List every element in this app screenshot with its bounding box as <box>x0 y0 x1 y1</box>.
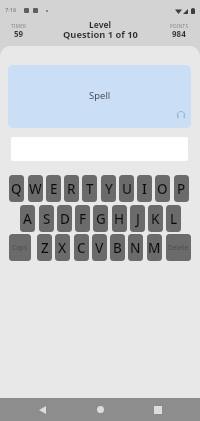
button[interactable]: Back <box>34 402 50 417</box>
staticText: M <box>148 239 161 257</box>
button[interactable]: C <box>74 234 89 261</box>
staticText: X <box>58 239 67 257</box>
button[interactable]: E <box>46 175 61 202</box>
button[interactable]: X <box>55 234 70 261</box>
staticText: N <box>130 239 141 257</box>
staticText: F <box>79 210 87 228</box>
staticText: Q <box>11 180 22 198</box>
button[interactable]: Recents <box>150 402 166 417</box>
button[interactable]: D <box>57 205 72 232</box>
staticText: Delete <box>168 243 189 252</box>
staticText: T <box>86 180 94 198</box>
button[interactable]: A <box>20 205 35 232</box>
button[interactable]: B <box>110 234 125 261</box>
button[interactable]: Z <box>37 234 52 261</box>
staticText: I <box>142 180 147 198</box>
button[interactable]: U <box>119 175 134 202</box>
staticText: B <box>113 239 122 257</box>
staticText: O <box>157 180 168 198</box>
staticText: V <box>95 239 104 257</box>
staticText: Z <box>41 239 49 257</box>
button[interactable]: Backspace <box>166 234 191 261</box>
staticText: R <box>67 180 76 198</box>
staticText: Level <box>89 19 112 31</box>
staticText: L <box>170 210 178 228</box>
staticText: U <box>122 180 132 198</box>
staticText: S <box>43 210 51 228</box>
button[interactable]: Shift <box>9 234 31 261</box>
staticText: Y <box>105 180 113 198</box>
button[interactable]: Play sound <box>175 109 187 121</box>
staticText: POINTS <box>170 23 189 29</box>
staticText: 59 <box>14 28 24 39</box>
staticText: A <box>23 210 32 228</box>
button[interactable]: I <box>137 175 152 202</box>
button[interactable]: Y <box>101 175 116 202</box>
staticText: Caps <box>12 243 28 252</box>
button[interactable]: Home <box>92 402 108 417</box>
staticText: Question 1 of 10 <box>63 28 138 41</box>
button[interactable]: W <box>28 175 43 202</box>
staticText: J <box>136 210 140 228</box>
staticText: 7:16 <box>5 6 17 14</box>
staticText: C <box>77 239 86 257</box>
button[interactable]: J <box>130 205 145 232</box>
button[interactable]: H <box>112 205 127 232</box>
staticText: P <box>177 180 186 198</box>
staticText: Spell <box>89 89 111 102</box>
staticText: K <box>151 210 160 228</box>
button[interactable]: T <box>82 175 97 202</box>
staticText: 984 <box>172 28 186 39</box>
button[interactable]: K <box>148 205 163 232</box>
button[interactable]: P <box>174 175 189 202</box>
button[interactable]: F <box>75 205 90 232</box>
staticText: E <box>50 180 58 198</box>
button[interactable]: O <box>155 175 170 202</box>
staticText: D <box>60 210 70 228</box>
staticText: TIMER <box>11 23 27 29</box>
button[interactable]: N <box>128 234 143 261</box>
staticText: G <box>96 210 106 228</box>
button[interactable]: G <box>93 205 108 232</box>
button[interactable]: R <box>64 175 79 202</box>
button[interactable]: Spell <box>8 65 191 128</box>
button[interactable]: V <box>92 234 107 261</box>
button[interactable]: Q <box>9 175 24 202</box>
button[interactable]: S <box>39 205 54 232</box>
staticText: W <box>29 180 42 198</box>
staticText: H <box>114 210 125 228</box>
button[interactable]: L <box>166 205 181 232</box>
button[interactable]: M <box>147 234 162 261</box>
